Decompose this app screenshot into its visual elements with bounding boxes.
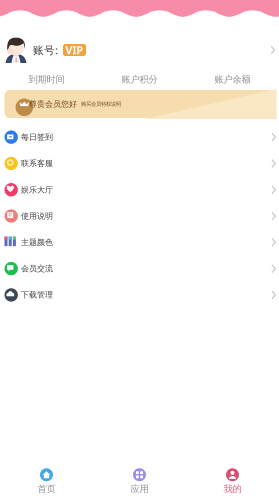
staticText: 首页 — [37, 483, 55, 495]
staticText: 我的 — [223, 483, 241, 495]
button[interactable]: 娱乐大厅 — [0, 177, 279, 203]
staticText: 账户余额 — [214, 74, 250, 85]
staticText: 娱乐大厅 — [21, 185, 53, 195]
staticText: VIP — [65, 43, 83, 57]
staticText: 下载管理 — [21, 290, 53, 300]
staticText: 联系客服 — [21, 158, 53, 168]
staticText: 会员交流 — [21, 264, 53, 273]
button[interactable]: 我的 — [186, 463, 279, 500]
staticText: 到期时间 — [28, 74, 64, 85]
button[interactable]: 账号: — [0, 30, 279, 70]
button[interactable]: 使用说明 — [0, 203, 279, 229]
button[interactable]: 尊贵会员您好 — [4, 90, 274, 118]
button[interactable]: 主题颜色 — [0, 229, 279, 255]
button[interactable]: 联系客服 — [0, 150, 279, 177]
staticText: 账号: — [33, 43, 58, 57]
button[interactable]: 首页 — [0, 463, 93, 500]
staticText: 使用说明 — [21, 211, 53, 221]
button[interactable]: 每日签到 — [0, 124, 279, 150]
staticText: 尊贵会员您好 — [29, 99, 77, 109]
staticText: 主题颜色 — [21, 237, 53, 247]
staticText: 账户积分 — [121, 74, 157, 85]
button[interactable]: 下载管理 — [0, 282, 279, 308]
button[interactable]: 会员交流 — [0, 255, 279, 282]
staticText: 应用 — [130, 483, 148, 495]
staticText: 每日签到 — [21, 132, 53, 142]
button[interactable]: 应用 — [93, 463, 186, 500]
staticText: 购买会员特权说明 — [81, 101, 121, 107]
